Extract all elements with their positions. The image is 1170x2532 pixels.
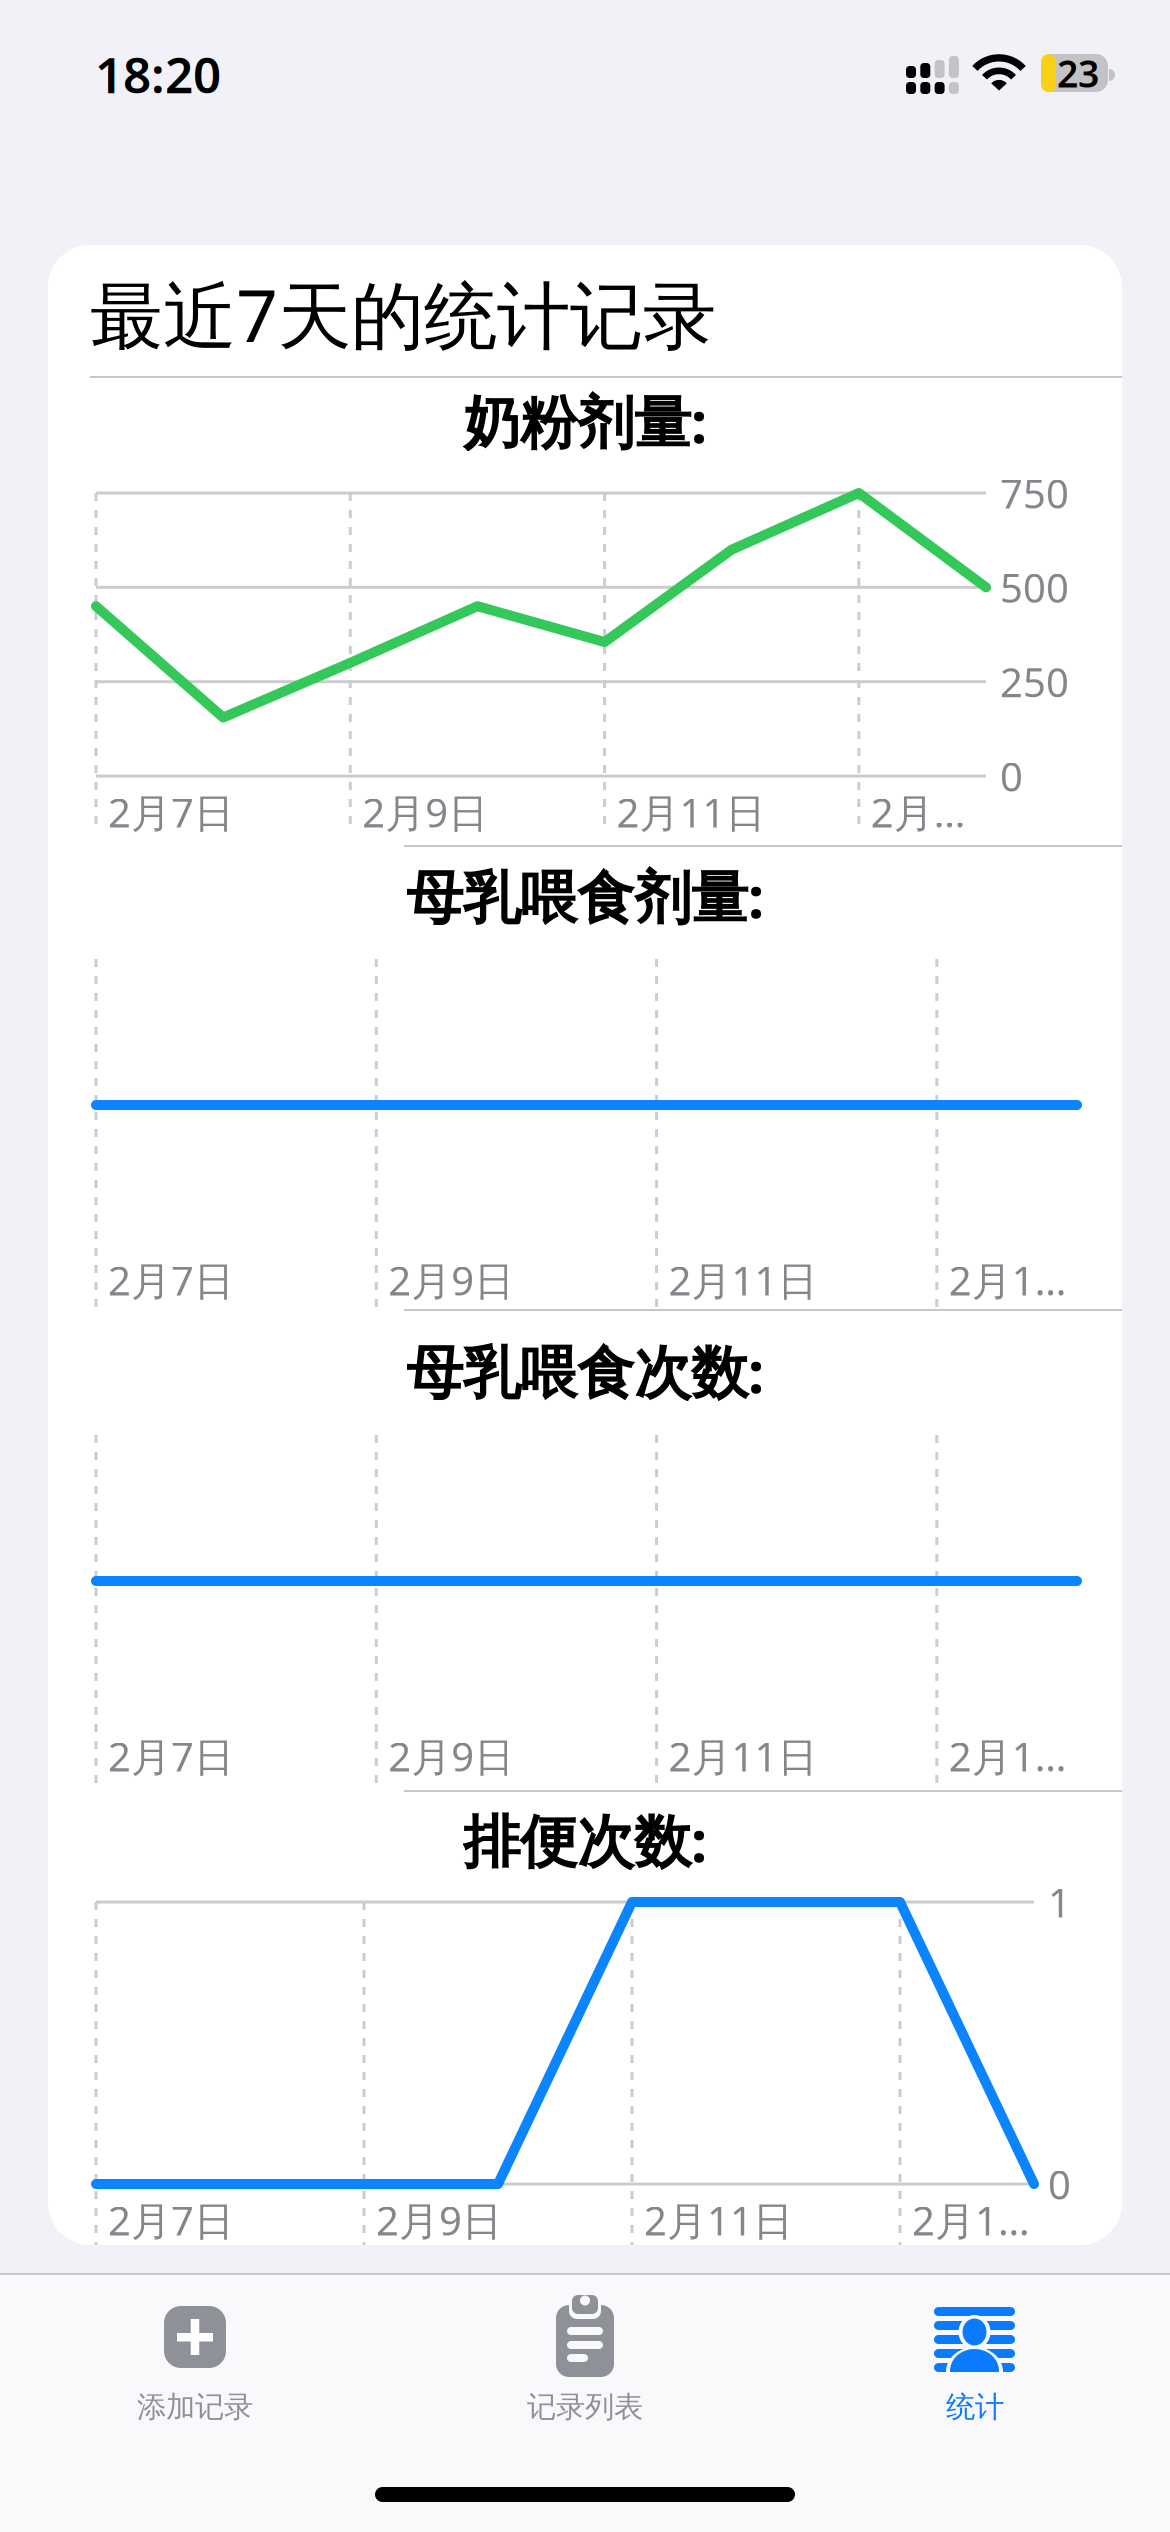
staticText: 排便次数:	[463, 1802, 707, 1878]
staticText: 2月9日	[376, 2193, 502, 2246]
staticText: 2月11日	[644, 2193, 793, 2246]
staticText: 记录列表	[527, 2389, 643, 2425]
staticText: 最近7天的统计记录	[90, 265, 716, 363]
staticText: 2月1…	[912, 2193, 1030, 2246]
button[interactable]: 记录列表	[390, 2290, 780, 2440]
staticText: 2月9日	[388, 1253, 514, 1306]
staticText: 2月7日	[108, 2193, 234, 2246]
staticText: 250	[1000, 655, 1069, 708]
staticText: 添加记录	[137, 2389, 253, 2425]
staticText: 2月1…	[949, 1253, 1067, 1306]
staticText: 18:20	[95, 41, 221, 107]
staticText: 2月9日	[388, 1729, 514, 1782]
staticText: 统计	[946, 2389, 1004, 2425]
button[interactable]: 添加记录	[0, 2290, 390, 2440]
staticText: 1	[1048, 1875, 1071, 1928]
staticText: 奶粉剂量:	[463, 383, 707, 459]
button[interactable]: 统计	[780, 2290, 1170, 2440]
staticText: 23	[1057, 48, 1099, 98]
staticText: 0	[1000, 749, 1023, 802]
staticText: 2月7日	[108, 1253, 234, 1306]
staticText: 500	[1000, 561, 1069, 614]
staticText: 750	[1000, 466, 1069, 519]
staticText: 2月11日	[669, 1253, 818, 1306]
staticText: 2月9日	[362, 785, 488, 838]
staticText: 2月7日	[108, 1729, 234, 1782]
staticText: 2月11日	[617, 785, 766, 838]
staticText: 2月…	[871, 785, 966, 838]
staticText: 2月11日	[669, 1729, 818, 1782]
staticText: 母乳喂食次数:	[406, 1333, 764, 1409]
staticText: 2月1…	[949, 1729, 1067, 1782]
staticText: 2月7日	[108, 785, 234, 838]
staticText: 母乳喂食剂量:	[406, 858, 764, 934]
staticText: 0	[1048, 2157, 1071, 2210]
